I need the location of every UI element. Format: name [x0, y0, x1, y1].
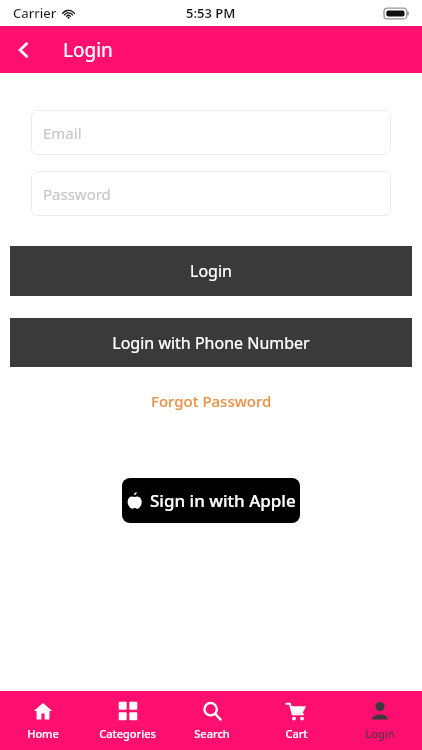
staticText: Login — [63, 37, 113, 63]
staticText: 5:53 PM — [186, 4, 236, 22]
staticText: Email — [43, 123, 82, 143]
staticText: Categories — [99, 726, 156, 741]
staticText: Login — [190, 260, 232, 282]
button[interactable]: Login — [338, 691, 422, 750]
button[interactable]: Sign in with Apple — [122, 478, 300, 523]
button[interactable]: Back — [0, 26, 48, 73]
button[interactable]: Login — [10, 246, 412, 296]
staticText: Forgot Password — [151, 391, 272, 411]
staticText: Login — [365, 726, 395, 741]
button[interactable]: Login with Phone Number — [10, 318, 412, 367]
staticText: Cart — [285, 726, 308, 741]
button[interactable]: Password — [31, 171, 391, 216]
button[interactable]: Email — [31, 110, 391, 155]
button[interactable]: Cart — [254, 691, 338, 750]
button[interactable]: Search — [170, 691, 254, 750]
staticText: Login with Phone Number — [112, 332, 310, 354]
staticText: Home — [27, 726, 59, 741]
button[interactable]: Forgot Password — [143, 387, 280, 415]
staticText: Password — [43, 184, 111, 204]
staticText: Carrier — [13, 4, 57, 22]
staticText: Search — [194, 726, 230, 741]
button[interactable]: Home — [0, 691, 85, 750]
button[interactable]: Categories — [85, 691, 170, 750]
staticText: Sign in with Apple — [150, 489, 296, 512]
